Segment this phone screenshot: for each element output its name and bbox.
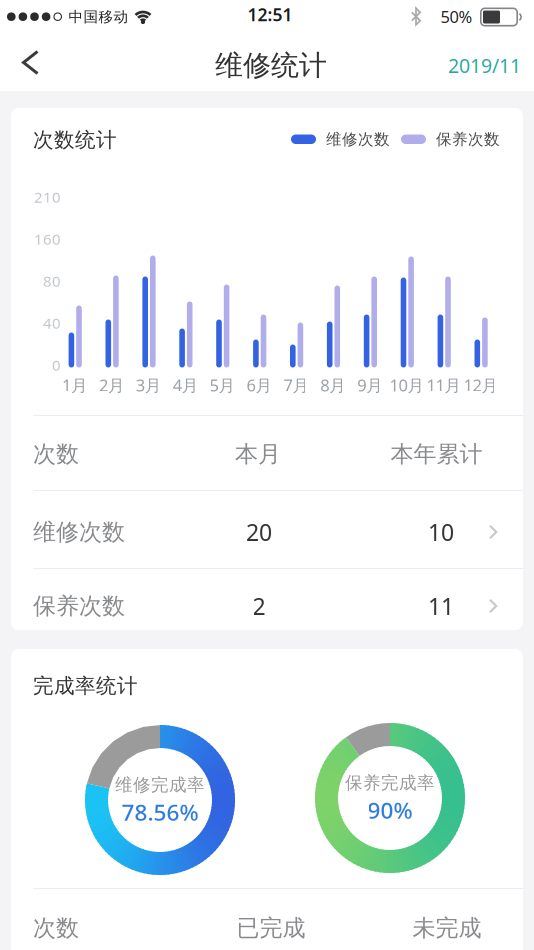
- staticText: 保养完成率: [345, 772, 435, 794]
- staticText: 12月: [463, 374, 498, 396]
- staticText: 9月: [357, 374, 383, 396]
- button[interactable]: 2019/11: [401, 40, 521, 91]
- staticText: 5月: [210, 374, 236, 396]
- staticText: 11: [428, 590, 454, 622]
- staticText: 10: [428, 516, 454, 548]
- staticText: 90%: [367, 795, 412, 825]
- staticText: 78.56%: [121, 797, 198, 827]
- staticText: 80: [43, 271, 61, 291]
- staticText: 完成率统计: [33, 673, 138, 699]
- staticText: 中国移动: [68, 8, 128, 26]
- staticText: 2019/11: [448, 52, 521, 79]
- staticText: 维修次数: [326, 129, 390, 149]
- staticText: 2月: [99, 374, 125, 396]
- staticText: 3月: [136, 374, 162, 396]
- staticText: 2: [252, 590, 265, 622]
- staticText: 保养次数: [33, 591, 125, 620]
- staticText: 40: [43, 313, 61, 333]
- staticText: 未完成: [412, 913, 481, 942]
- staticText: 20: [246, 516, 272, 548]
- staticText: 维修统计: [215, 48, 327, 83]
- staticText: 次数: [33, 439, 79, 468]
- staticText: 0: [52, 355, 61, 375]
- staticText: 6月: [246, 374, 272, 396]
- staticText: 本月: [235, 439, 281, 468]
- staticText: 210: [34, 187, 61, 207]
- button[interactable]: Back: [0, 40, 56, 91]
- staticText: 1月: [62, 374, 88, 396]
- button[interactable]: 维修次数: [11, 491, 523, 569]
- staticText: 10月: [390, 374, 425, 396]
- staticText: 8月: [320, 374, 346, 396]
- staticText: 保养次数: [436, 129, 500, 149]
- staticText: 50%: [440, 5, 472, 28]
- staticText: 本年累计: [390, 439, 482, 468]
- staticText: 已完成: [236, 913, 305, 942]
- staticText: 7月: [283, 374, 309, 396]
- staticText: 维修完成率: [115, 774, 205, 796]
- staticText: 12:51: [247, 3, 292, 26]
- staticText: 4月: [173, 374, 199, 396]
- staticText: 次数: [33, 913, 79, 942]
- staticText: 次数统计: [33, 127, 117, 153]
- staticText: 160: [34, 229, 61, 249]
- staticText: 11月: [426, 374, 461, 396]
- staticText: 维修次数: [33, 517, 125, 546]
- button[interactable]: 保养次数: [11, 569, 523, 630]
